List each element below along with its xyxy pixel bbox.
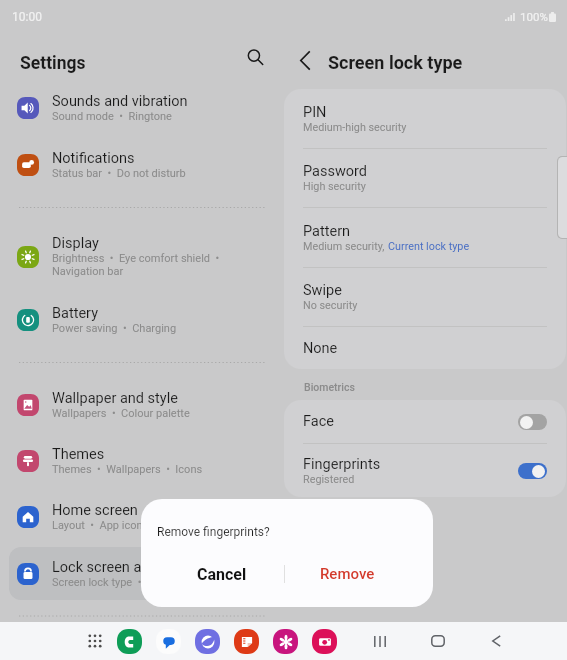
button[interactable]: Remove [287,553,433,595]
staticText: Status bar • Do not disturb [52,167,186,180]
staticText: Face [303,413,334,430]
button[interactable]: Face [284,400,566,443]
staticText: Brightness • Eye comfort shield • Naviga… [52,252,220,278]
staticText: Themes • Wallpapers • Icons [52,463,203,476]
button[interactable]: gallery [273,629,298,654]
staticText: Sound mode • Ringtone [52,110,172,123]
button[interactable]: Home screen [9,491,274,543]
button[interactable]: messages [156,629,181,654]
button[interactable]: notes [234,629,259,654]
staticText: Medium-high security [303,121,407,134]
staticText: Notifications [52,150,135,167]
button[interactable]: Display [9,224,274,289]
button[interactable]: Sounds and vibration [9,82,274,134]
staticText: 10:00 [12,10,42,24]
staticText: Medium security, [303,240,388,253]
staticText: None [303,340,338,357]
staticText: PIN [303,104,327,121]
button[interactable]: Wallpaper and style [9,379,274,431]
button[interactable]: Themes [9,435,274,487]
staticText: Pattern [303,223,351,240]
staticText: Power saving • Charging [52,322,177,335]
staticText: Lock screen and AOD [52,559,190,576]
staticText: Wallpaper and style [52,390,178,407]
staticText: Wallpapers • Colour palette [52,407,190,420]
staticText: Biometrics [304,381,355,393]
button[interactable]: None [284,327,566,369]
button[interactable]: Pattern [284,208,566,267]
button[interactable]: Battery [9,293,274,346]
button[interactable]: Cancel [141,553,287,595]
staticText: Battery [52,305,98,322]
staticText: Screen lock type [328,52,463,73]
staticText: Themes [52,446,105,463]
staticText: Settings [20,53,86,74]
button[interactable]: Notifications [9,138,274,191]
staticText: Home screen [52,502,138,519]
button[interactable]: Recents [368,629,392,653]
button[interactable]: Home [426,629,450,653]
staticText: Remove [320,565,375,583]
button[interactable]: Search [241,43,269,71]
staticText: Display [52,235,99,252]
button[interactable]: Back [484,629,508,653]
staticText: Fingerprints [303,456,381,473]
staticText: No security [303,299,358,312]
button[interactable]: Password [284,149,566,207]
staticText: Sounds and vibration [52,93,188,110]
staticText: Screen lock type • Always On Display [52,576,237,589]
staticText: Password [303,163,368,180]
staticText: Registered [303,473,355,486]
button[interactable]: Apps [82,628,108,654]
staticText: High security [303,180,366,193]
button[interactable]: Swipe [284,268,566,326]
staticText: 100% [520,10,548,23]
button[interactable]: Back [292,47,318,73]
button[interactable]: internet [195,629,220,654]
button[interactable]: PIN [284,89,566,148]
staticText: Remove fingerprints? [157,525,270,539]
staticText: Layout • App icon badges [52,519,182,532]
button[interactable]: camera [312,629,337,654]
button[interactable]: phone [117,629,142,654]
staticText: Current lock type [388,240,470,253]
button[interactable]: Fingerprints [284,444,566,497]
staticText: Cancel [197,565,247,584]
button[interactable]: Lock screen and AOD [9,547,274,600]
staticText: Swipe [303,282,342,299]
